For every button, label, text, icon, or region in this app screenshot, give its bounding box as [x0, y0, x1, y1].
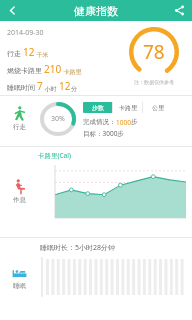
staticText: 卡路里 [62, 68, 82, 76]
staticText: 健康指数 [74, 4, 118, 18]
button[interactable]: Share [166, 0, 192, 21]
staticText: 燃烧卡路里 [7, 66, 44, 76]
staticText: 公里 [152, 104, 164, 112]
staticText: 作息 [13, 196, 26, 204]
staticText: 78 [143, 39, 165, 65]
staticText: 1000 [116, 118, 131, 127]
staticText: 步 [131, 118, 138, 126]
button[interactable]: 卡路里 [113, 102, 142, 113]
staticText: 完成情况： [83, 118, 116, 126]
staticText: 睡眠时间 [7, 83, 37, 93]
staticText: 行走 [7, 49, 23, 59]
staticText: 千米 [35, 51, 49, 59]
staticText: 睡眠时长：5小时28分钟 [40, 243, 116, 253]
staticText: 卡路里 [119, 104, 137, 112]
staticText: 12 [59, 79, 71, 93]
button[interactable]: Back [0, 0, 24, 21]
staticText: 30% [51, 114, 65, 124]
staticText: 210 [44, 62, 62, 76]
button[interactable]: 步数 [83, 102, 112, 113]
staticText: 分 [71, 85, 77, 93]
staticText: 目标：3000步 [83, 129, 124, 138]
staticText: 7 [37, 79, 43, 93]
staticText: 睡眠 [13, 282, 26, 290]
staticText: 12 [23, 45, 35, 59]
staticText: 步数 [92, 104, 104, 112]
button[interactable]: 公里 [143, 102, 172, 113]
staticText: 注：数据仅供参考 [134, 79, 174, 85]
staticText: 卡路里(Cal) [38, 151, 71, 160]
staticText: 行走 [13, 123, 26, 131]
staticText: 小时 [43, 85, 59, 93]
staticText: 2014-09-30 [7, 28, 44, 38]
